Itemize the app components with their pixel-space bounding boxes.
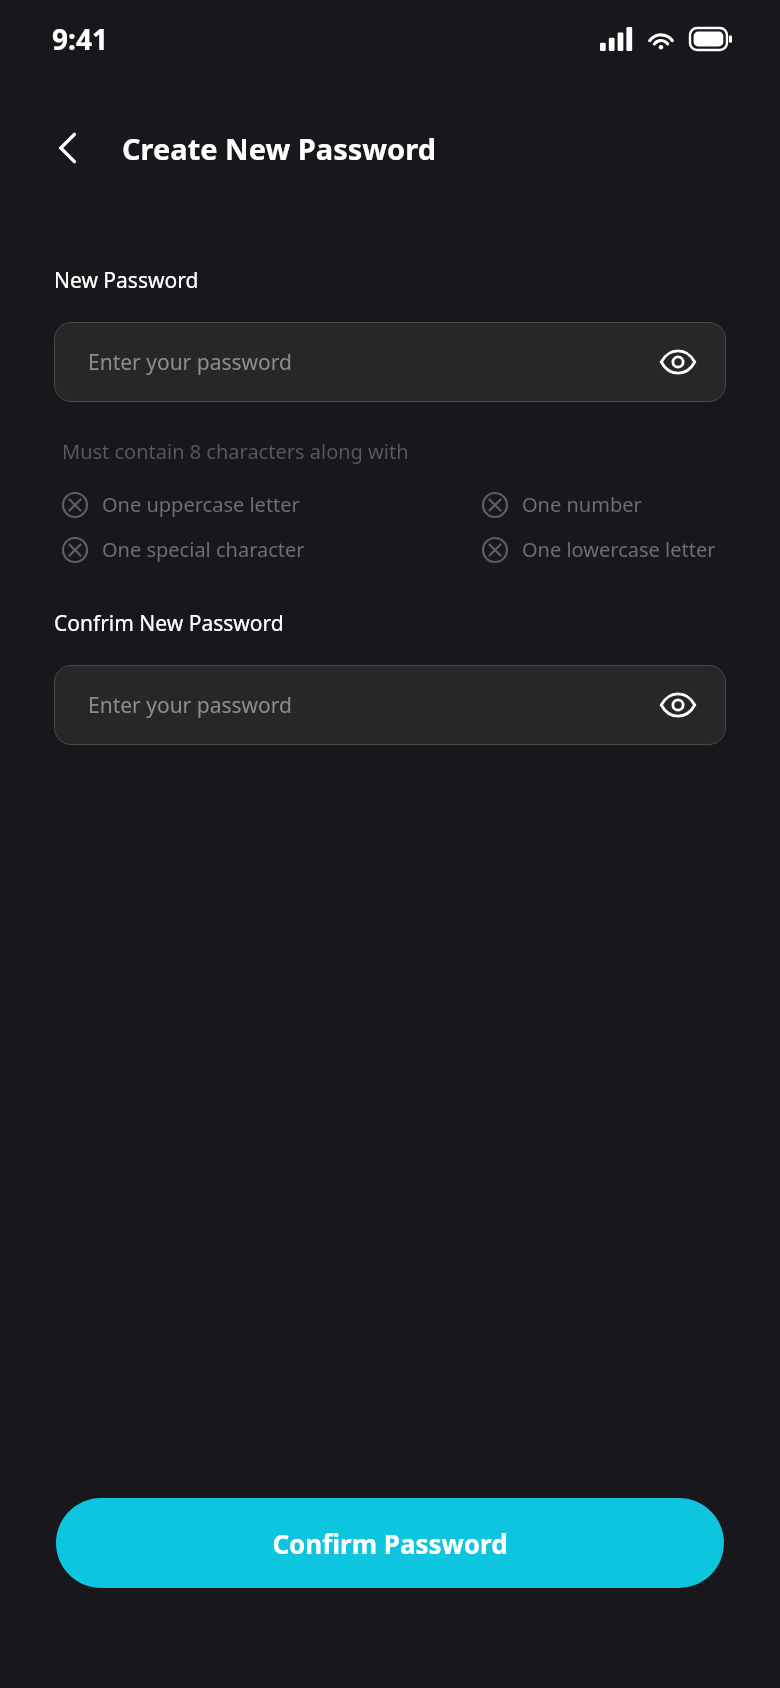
staticText: Confrim New Password	[54, 609, 284, 638]
staticText: Enter your password	[88, 691, 292, 720]
staticText: One lowercase letter	[522, 536, 716, 563]
button[interactable]: Show password	[652, 679, 704, 731]
staticText: Confirm Password	[272, 1526, 508, 1561]
staticText: One special character	[102, 536, 305, 563]
staticText: Enter your password	[88, 348, 292, 377]
staticText: Must contain 8 characters along with	[62, 438, 409, 465]
staticText: Create New Password	[122, 129, 436, 168]
button[interactable]: Back	[36, 116, 100, 180]
button[interactable]: Enter your password	[54, 665, 726, 745]
button[interactable]: Show password	[652, 336, 704, 388]
staticText: One number	[522, 491, 642, 518]
button[interactable]: Enter your password	[54, 322, 726, 402]
staticText: New Password	[54, 266, 199, 295]
staticText: One uppercase letter	[102, 491, 300, 518]
button[interactable]: Confirm Password	[56, 1498, 724, 1588]
staticText: 9:41	[52, 20, 108, 58]
